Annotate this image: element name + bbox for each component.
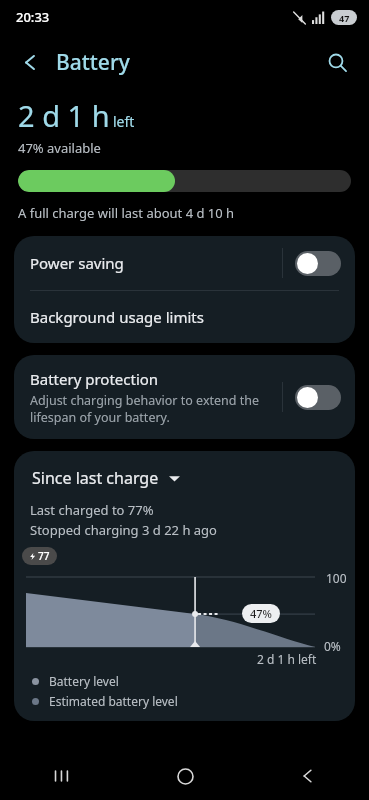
staticText: 77 bbox=[38, 549, 50, 563]
staticText: A full charge will last about 4 d 10 h bbox=[18, 204, 235, 222]
staticText: Last charged to 77% bbox=[30, 501, 154, 519]
button[interactable]: Toggle bbox=[295, 251, 341, 276]
button[interactable]: Power saving bbox=[14, 236, 355, 290]
button[interactable]: Toggle bbox=[295, 385, 341, 410]
button[interactable]: Battery protection bbox=[14, 355, 355, 439]
staticText: Battery protection bbox=[30, 369, 159, 389]
button[interactable]: Recent apps bbox=[38, 752, 86, 800]
staticText: 47 bbox=[339, 12, 350, 24]
staticText: 2 d 1 h left bbox=[257, 651, 317, 667]
staticText: Power saving bbox=[30, 253, 282, 273]
staticText: Estimated battery level bbox=[49, 693, 178, 709]
staticText: 100 bbox=[326, 570, 347, 586]
staticText: 0% bbox=[324, 638, 341, 654]
button[interactable]: Home bbox=[161, 752, 209, 800]
staticText: left bbox=[113, 112, 135, 131]
staticText: Stopped charging 3 d 22 h ago bbox=[30, 521, 217, 539]
staticText: 47% bbox=[250, 606, 272, 621]
staticText: 2 d 1 h bbox=[18, 96, 110, 135]
staticText: Background usage limits bbox=[30, 307, 204, 327]
button[interactable]: Back bbox=[8, 40, 52, 84]
staticText: Battery bbox=[56, 48, 130, 77]
staticText: 47% available bbox=[18, 139, 101, 157]
button[interactable]: Since last charge bbox=[30, 465, 182, 491]
staticText: 20:33 bbox=[16, 8, 50, 26]
staticText: Since last charge bbox=[32, 467, 159, 489]
staticText: Battery level bbox=[49, 673, 119, 689]
button[interactable]: Search bbox=[315, 40, 359, 84]
button[interactable]: Back bbox=[284, 752, 332, 800]
button[interactable]: Background usage limits bbox=[14, 291, 355, 343]
staticText: Adjust charging behavior to extend the l… bbox=[30, 392, 272, 425]
